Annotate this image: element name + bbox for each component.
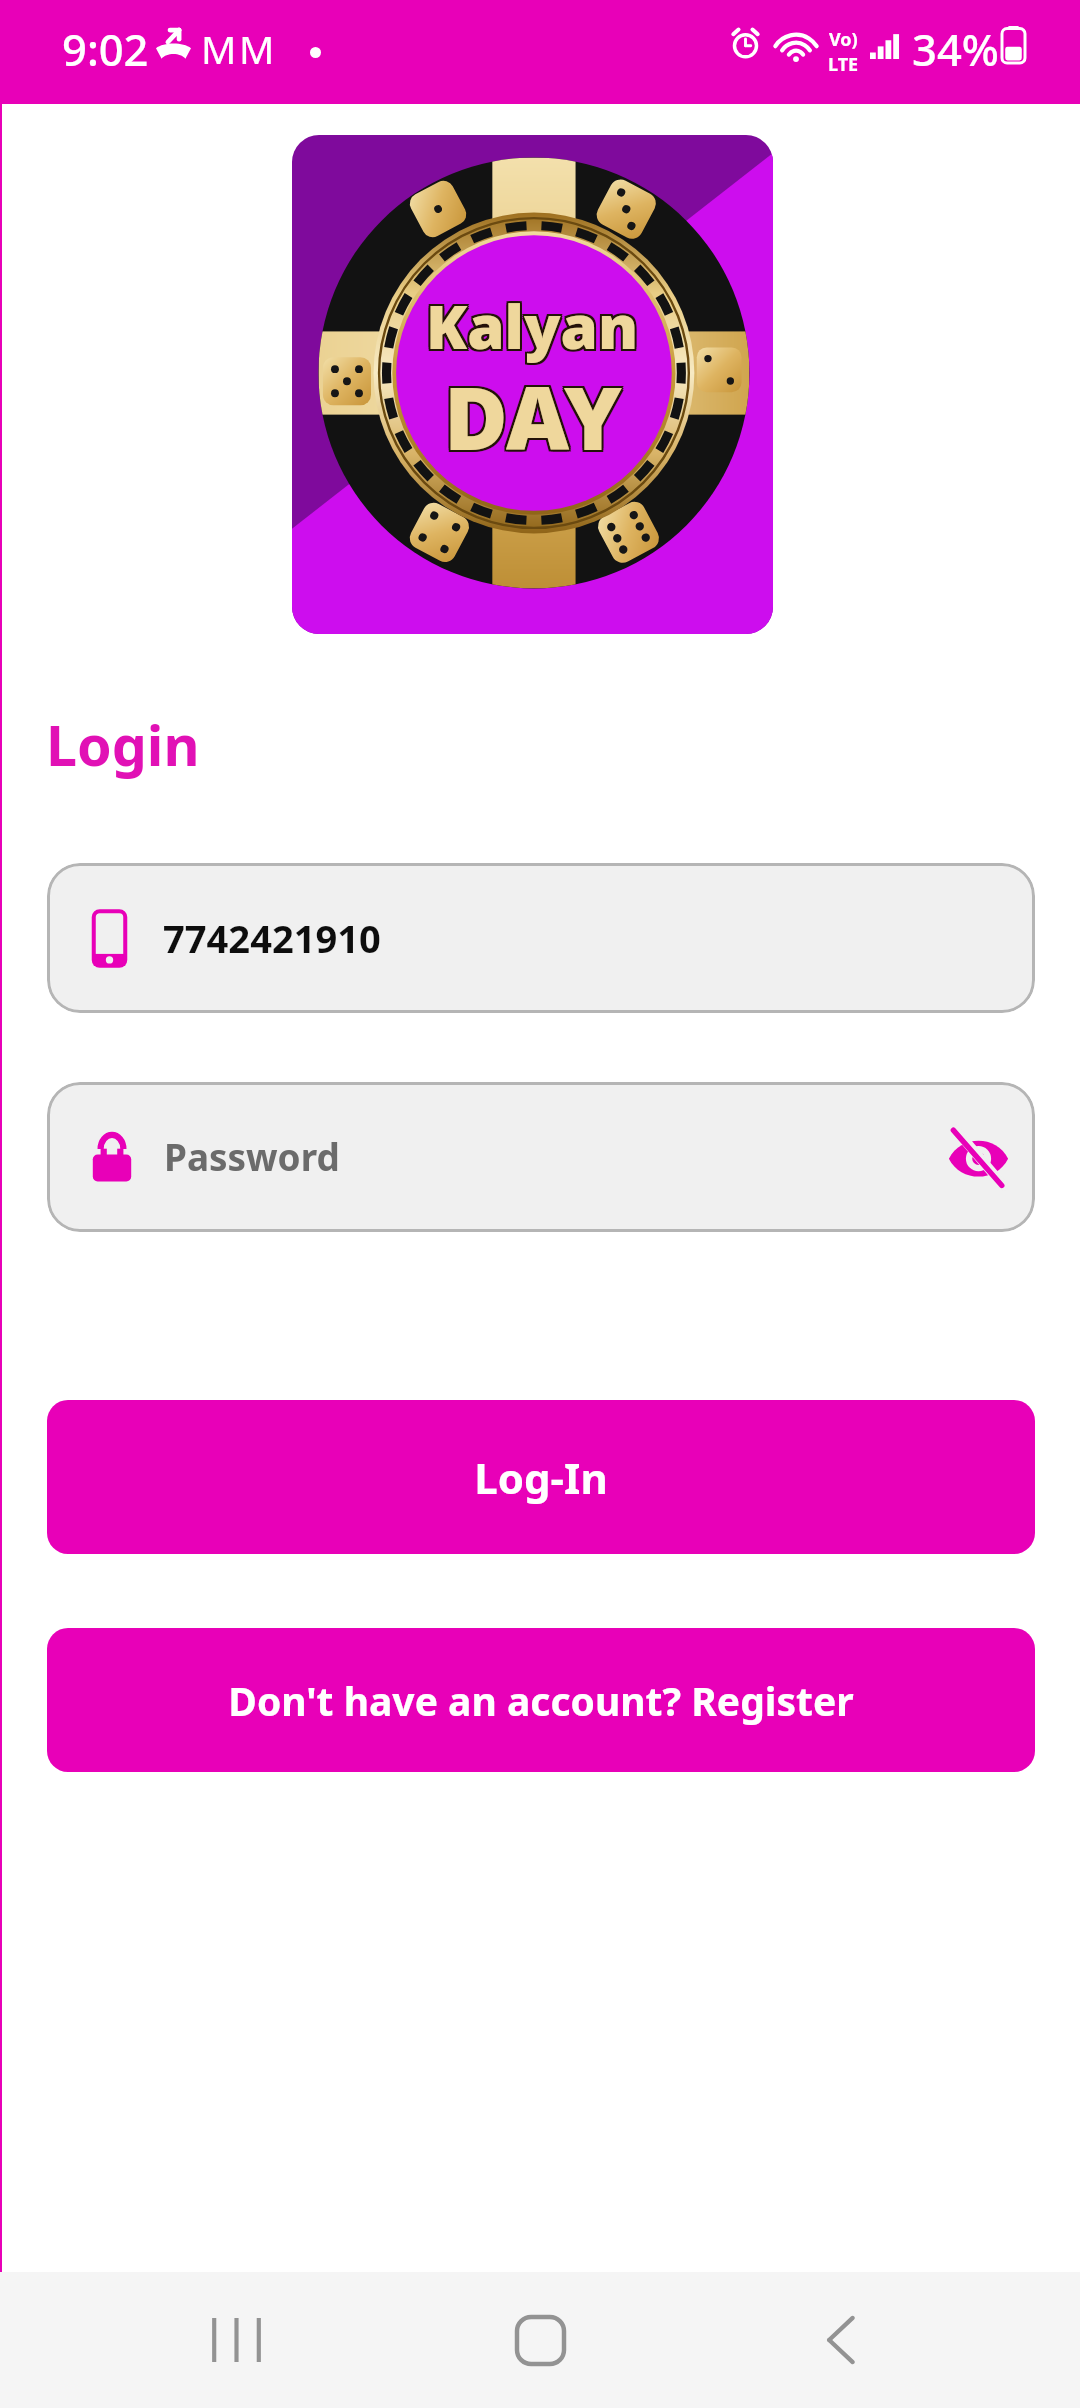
button[interactable]: Recents [152, 2272, 320, 2408]
staticText: Kalyan [424, 283, 637, 365]
staticText: Kalyan [426, 285, 639, 367]
staticText: Don't have an account? Register [228, 1674, 854, 1727]
staticText: DAY [444, 355, 622, 473]
button[interactable]: Back [756, 2272, 924, 2408]
staticText: LTE [828, 52, 859, 77]
staticText: Kalyan [424, 285, 637, 367]
staticText: Log-In [474, 1449, 608, 1506]
button[interactable]: Home [456, 2272, 624, 2408]
button[interactable]: Don't have an account? Register [47, 1628, 1035, 1772]
staticText: DAY [446, 355, 624, 473]
staticText: Kalyan [428, 287, 641, 369]
button[interactable]: 7742421910 [47, 863, 1035, 1013]
staticText: DAY [446, 357, 624, 475]
button[interactable]: Show password [927, 1106, 1029, 1208]
button[interactable]: Log-In [47, 1400, 1035, 1554]
staticText: M [201, 22, 237, 75]
staticText: Kalyan [426, 287, 639, 369]
staticText: DAY [442, 357, 620, 475]
staticText: 34% [912, 19, 999, 78]
staticText: Vo) [829, 27, 858, 52]
button[interactable]: Password [47, 1082, 1035, 1232]
staticText: Kalyan [428, 285, 641, 367]
staticText: 7742421910 [163, 912, 381, 964]
staticText: DAY [444, 357, 622, 475]
staticText: DAY [446, 359, 624, 477]
staticText: M [239, 22, 275, 75]
staticText: Kalyan [428, 283, 641, 365]
staticText: 9:02 [62, 19, 149, 78]
staticText: DAY [442, 355, 620, 473]
staticText: Password [164, 1132, 340, 1182]
staticText: DAY [444, 359, 622, 477]
staticText: Kalyan [426, 283, 639, 365]
staticText: Login [46, 707, 200, 783]
staticText: DAY [442, 359, 620, 477]
staticText: Kalyan [424, 287, 637, 369]
